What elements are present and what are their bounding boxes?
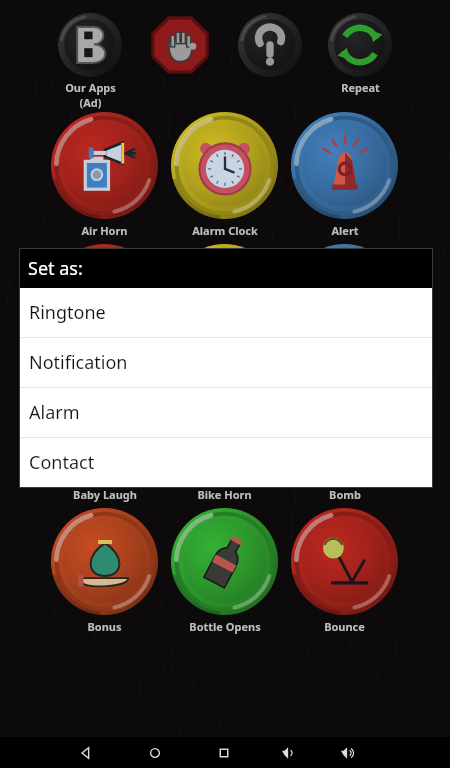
- staticText: Contact: [29, 450, 95, 475]
- button[interactable]: Bonus: [51, 508, 158, 634]
- button[interactable]: Alarm: [20, 388, 432, 438]
- button[interactable]: Stop: [148, 13, 212, 77]
- button[interactable]: Recents: [208, 737, 239, 768]
- button[interactable]: Applause: [51, 244, 158, 370]
- button[interactable]: Volume up: [332, 737, 363, 768]
- button[interactable]: Bark: [291, 244, 398, 370]
- staticText: Applause: [79, 355, 130, 370]
- staticText: Bonus: [87, 619, 122, 634]
- button[interactable]: Our Apps Ad: [58, 13, 122, 110]
- button[interactable]: Air Horn: [51, 112, 158, 238]
- button[interactable]: Repeat: [328, 13, 392, 95]
- staticText: Bomb: [329, 487, 361, 502]
- staticText: Alert: [331, 223, 359, 238]
- button[interactable]: Bottle Opens: [171, 508, 278, 634]
- staticText: Alarm: [29, 400, 80, 425]
- button[interactable]: Baby Laugh: [51, 376, 158, 502]
- button[interactable]: Ringtone: [20, 288, 432, 338]
- button[interactable]: Home: [139, 737, 170, 768]
- staticText: Air Horn: [81, 223, 128, 238]
- button[interactable]: Help: [238, 13, 302, 77]
- button[interactable]: Contact: [20, 438, 432, 487]
- button[interactable]: Alarm Clock: [171, 112, 278, 238]
- button[interactable]: Volume down: [273, 737, 304, 768]
- button[interactable]: Bomb: [291, 376, 398, 502]
- button[interactable]: Notification: [20, 338, 432, 388]
- staticText: Set as:: [28, 256, 83, 281]
- staticText: Alarm Clock: [192, 223, 258, 238]
- staticText: Bike Horn: [197, 487, 252, 502]
- button[interactable]: Back: [70, 737, 101, 768]
- button[interactable]: Bounce: [291, 508, 398, 634]
- staticText: Repeat: [341, 80, 380, 95]
- button[interactable]: Alert: [291, 112, 398, 238]
- staticText: Our Apps (Ad): [65, 80, 116, 110]
- staticText: Bounce: [324, 619, 365, 634]
- staticText: Notification: [29, 350, 128, 375]
- button[interactable]: Bike Horn: [171, 376, 278, 502]
- staticText: Ringtone: [29, 300, 106, 325]
- staticText: Baby Laugh: [73, 487, 137, 502]
- button[interactable]: Baby Cry: [171, 244, 278, 370]
- staticText: Bottle Opens: [189, 619, 261, 634]
